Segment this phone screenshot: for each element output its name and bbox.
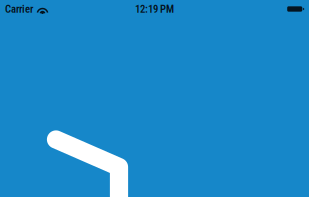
staticText: Carrier <box>5 3 33 15</box>
staticText: 12:19 PM <box>135 3 174 15</box>
